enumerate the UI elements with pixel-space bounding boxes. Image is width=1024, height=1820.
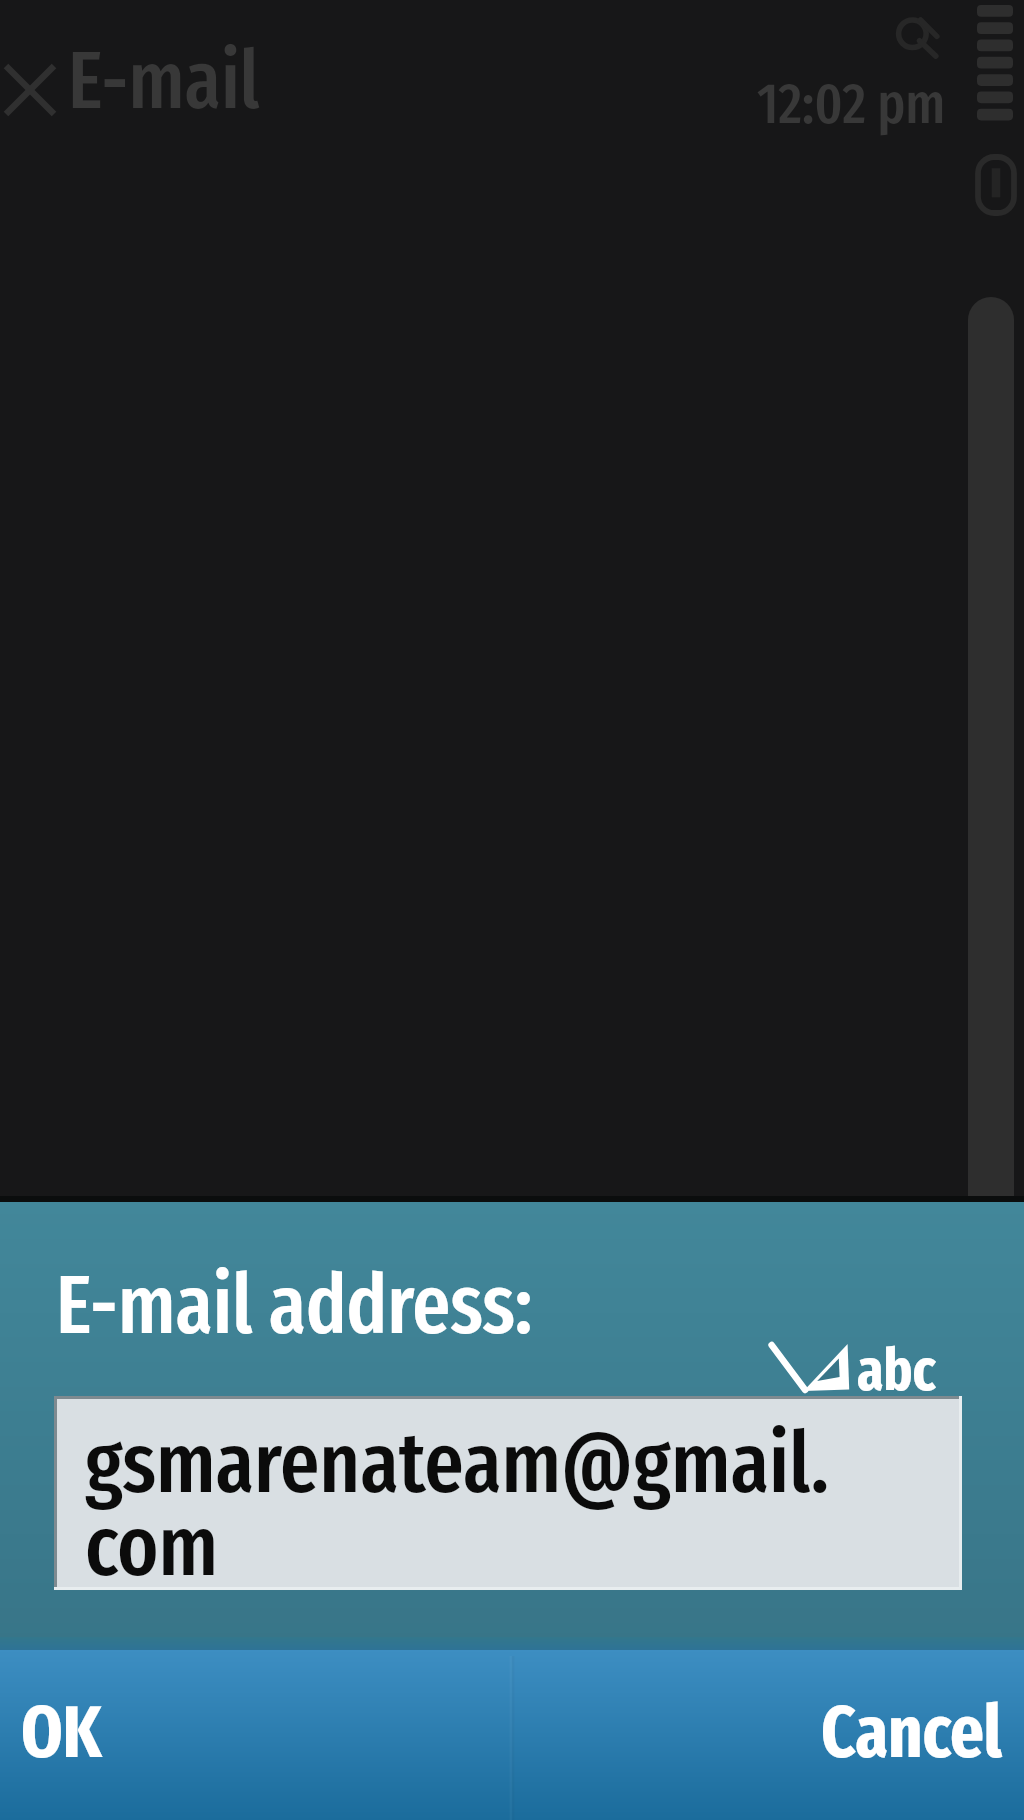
button[interactable]: Input mode: abc <box>760 1328 946 1400</box>
staticText: 12:02 pm <box>757 70 946 138</box>
button[interactable]: OK <box>0 1645 512 1820</box>
staticText: abc <box>857 1336 936 1406</box>
button[interactable]: Cancel <box>512 1645 1024 1820</box>
staticText: gsmarenateam@gmail. com <box>85 1413 830 1597</box>
button[interactable]: E-mail address entry field <box>57 1399 959 1587</box>
staticText: E-mail address: <box>56 1256 533 1354</box>
staticText: Cancel <box>821 1690 1003 1776</box>
button[interactable]: Close <box>0 42 64 138</box>
staticText: OK <box>21 1690 102 1776</box>
staticText: E-mail <box>68 33 260 129</box>
